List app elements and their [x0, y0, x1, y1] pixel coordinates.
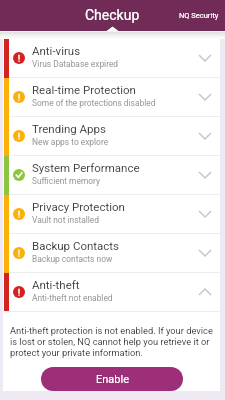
- staticText: Checkup: [85, 7, 140, 23]
- staticText: Anti-virus: [32, 44, 81, 57]
- other: Expand: [189, 39, 220, 77]
- other: Collapse: [189, 273, 220, 311]
- staticText: protect your private information.: [10, 347, 143, 358]
- staticText: System Performance: [32, 161, 140, 174]
- staticText: Anti-theft not enabled: [32, 293, 113, 303]
- button[interactable]: Anti-theft: [3, 273, 220, 311]
- staticText: Privacy Protection: [32, 200, 125, 213]
- staticText: Trending Apps: [32, 122, 106, 135]
- staticText: Virus Database expired: [32, 59, 119, 69]
- staticText: Enable: [96, 373, 129, 386]
- button[interactable]: Privacy Protection: [3, 195, 220, 233]
- button[interactable]: System Performance: [3, 156, 220, 194]
- staticText: is lost or stolen, NQ cannot help you re…: [10, 336, 210, 347]
- staticText: New apps to explore: [32, 137, 109, 147]
- staticText: Anti-theft: [32, 278, 80, 291]
- staticText: Backup contacts now: [32, 254, 113, 264]
- button[interactable]: Real-time Protection: [3, 78, 220, 116]
- other: Expand: [189, 78, 220, 116]
- other: Expand: [189, 117, 220, 155]
- button[interactable]: Enable: [41, 367, 183, 391]
- staticText: Anti-theft protection is not enabled. If…: [10, 325, 213, 336]
- other: Expand: [189, 156, 220, 194]
- other: Expand: [189, 234, 220, 272]
- staticText: Real-time Protection: [32, 83, 136, 96]
- staticText: Vault not installed: [32, 215, 100, 225]
- staticText: Backup Contacts: [32, 239, 120, 252]
- staticText: Sufficient memory: [32, 176, 100, 186]
- button[interactable]: Trending Apps: [3, 117, 220, 155]
- staticText: NQ Security: [179, 11, 219, 20]
- button[interactable]: Anti-virus: [3, 39, 220, 77]
- other: Expand: [189, 195, 220, 233]
- button[interactable]: Backup Contacts: [3, 234, 220, 272]
- staticText: Some of the protections disabled: [32, 98, 156, 108]
